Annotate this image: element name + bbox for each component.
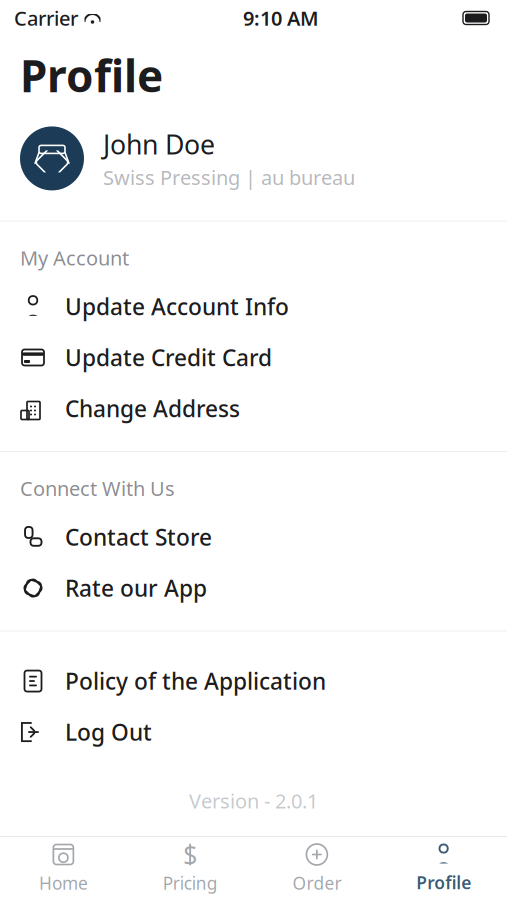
staticText: 9:10 AM (243, 5, 319, 31)
staticText: Rate our App (65, 573, 207, 603)
staticText: Home (39, 871, 88, 894)
staticText: Policy of the Application (65, 666, 326, 696)
staticText: Pricing (163, 871, 218, 894)
staticText: Connect With Us (20, 475, 175, 502)
button[interactable]: Contact Store (0, 511, 507, 562)
staticText: Version - 2.0.1 (189, 787, 318, 814)
button[interactable]: S (127, 837, 254, 900)
button[interactable]: Rate our App (0, 562, 507, 613)
button[interactable]: Update Credit Card (0, 332, 507, 383)
staticText: Carrier (14, 5, 78, 31)
button[interactable]: Update Account Info (0, 281, 507, 332)
staticText: Profile (416, 871, 471, 894)
button[interactable]: Log Out (0, 706, 507, 757)
button[interactable]: Order (253, 837, 380, 900)
staticText: Contact Store (65, 522, 212, 552)
button[interactable]: Home (0, 837, 127, 900)
staticText: John Doe (103, 126, 215, 162)
staticText: S (183, 838, 197, 871)
button[interactable]: Profile (380, 837, 507, 900)
staticText: My Account (20, 244, 129, 271)
staticText: Order (292, 871, 341, 894)
staticText: Profile (20, 46, 163, 104)
button[interactable]: Change Address (0, 383, 507, 434)
staticText: Change Address (65, 393, 240, 423)
staticText: Update Credit Card (65, 342, 272, 372)
staticText: Swiss Pressing | au bureau (103, 164, 355, 190)
staticText: Log Out (65, 717, 152, 747)
button[interactable]: Policy of the Application (0, 655, 507, 706)
staticText: Update Account Info (65, 291, 289, 321)
